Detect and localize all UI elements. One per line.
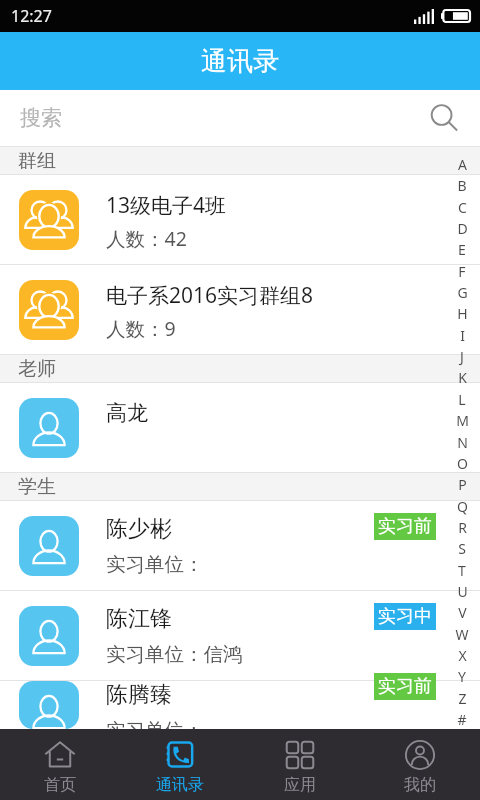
staticText: S (458, 539, 466, 558)
staticText: E (458, 240, 466, 259)
staticText: 老师 (18, 357, 56, 381)
staticText: T (458, 561, 466, 580)
staticText: J (460, 347, 464, 366)
button[interactable]: 首页 (0, 729, 120, 800)
staticText: 实习单位： (106, 718, 204, 729)
staticText: 人数：42 (106, 225, 187, 252)
button[interactable]: 电子系2016实习群组8 (0, 265, 480, 354)
staticText: V (458, 603, 467, 622)
button[interactable]: Alphabet index (444, 155, 480, 729)
staticText: R (458, 518, 467, 537)
staticText: F (458, 262, 466, 281)
button[interactable]: 通讯录 (120, 729, 240, 800)
staticText: 首页 (44, 775, 76, 795)
button[interactable]: 实习中 (374, 603, 436, 630)
staticText: D (457, 219, 468, 238)
staticText: 陈江锋 (106, 605, 172, 633)
staticText: 实习单位：信鸿 (106, 642, 243, 667)
staticText: W (455, 625, 469, 644)
staticText: I (460, 326, 465, 345)
staticText: A (458, 155, 467, 174)
staticText: G (457, 283, 468, 302)
staticText: 陈腾臻 (106, 681, 172, 709)
button[interactable]: 实习前 (374, 673, 436, 700)
staticText: 通讯录 (156, 775, 204, 795)
staticText: 电子系2016实习群组8 (106, 281, 314, 310)
staticText: B (457, 176, 467, 195)
staticText: P (458, 475, 467, 494)
button[interactable]: 高龙 (0, 383, 480, 472)
staticText: 陈少彬 (106, 515, 172, 543)
staticText: 13级电子4班 (106, 191, 227, 220)
staticText: 12:27 (11, 5, 52, 27)
staticText: H (457, 304, 468, 323)
staticText: 实习前 (378, 515, 432, 538)
staticText: C (458, 198, 467, 217)
staticText: 学生 (18, 475, 56, 499)
staticText: 我的 (404, 775, 436, 795)
staticText: K (458, 368, 467, 387)
other: Search (429, 103, 459, 133)
staticText: # (457, 710, 467, 729)
button[interactable]: 陈江锋 (0, 591, 480, 680)
staticText: O (457, 454, 468, 473)
staticText: M (456, 411, 469, 430)
staticText: X (458, 646, 467, 665)
staticText: Y (458, 667, 466, 686)
button[interactable]: 13级电子4班 (0, 175, 480, 264)
staticText: 搜索 (20, 105, 62, 131)
staticText: U (457, 582, 468, 601)
staticText: 实习中 (378, 605, 432, 628)
button[interactable]: 我的 (360, 729, 480, 800)
staticText: L (458, 390, 466, 409)
button[interactable]: 应用 (240, 729, 360, 800)
staticText: 人数：9 (106, 315, 176, 342)
button[interactable]: 陈少彬 (0, 501, 480, 590)
staticText: 群组 (18, 149, 56, 173)
staticText: 通讯录 (201, 45, 279, 78)
staticText: N (457, 433, 468, 452)
button[interactable]: 搜索 (0, 90, 480, 146)
staticText: Z (458, 689, 467, 708)
staticText: 高龙 (106, 400, 148, 426)
button[interactable]: 陈腾臻 (0, 681, 480, 729)
staticText: 实习前 (378, 675, 432, 698)
staticText: Q (457, 497, 468, 516)
staticText: 实习单位： (106, 552, 204, 577)
staticText: 应用 (284, 775, 316, 795)
button[interactable]: 实习前 (374, 513, 436, 540)
